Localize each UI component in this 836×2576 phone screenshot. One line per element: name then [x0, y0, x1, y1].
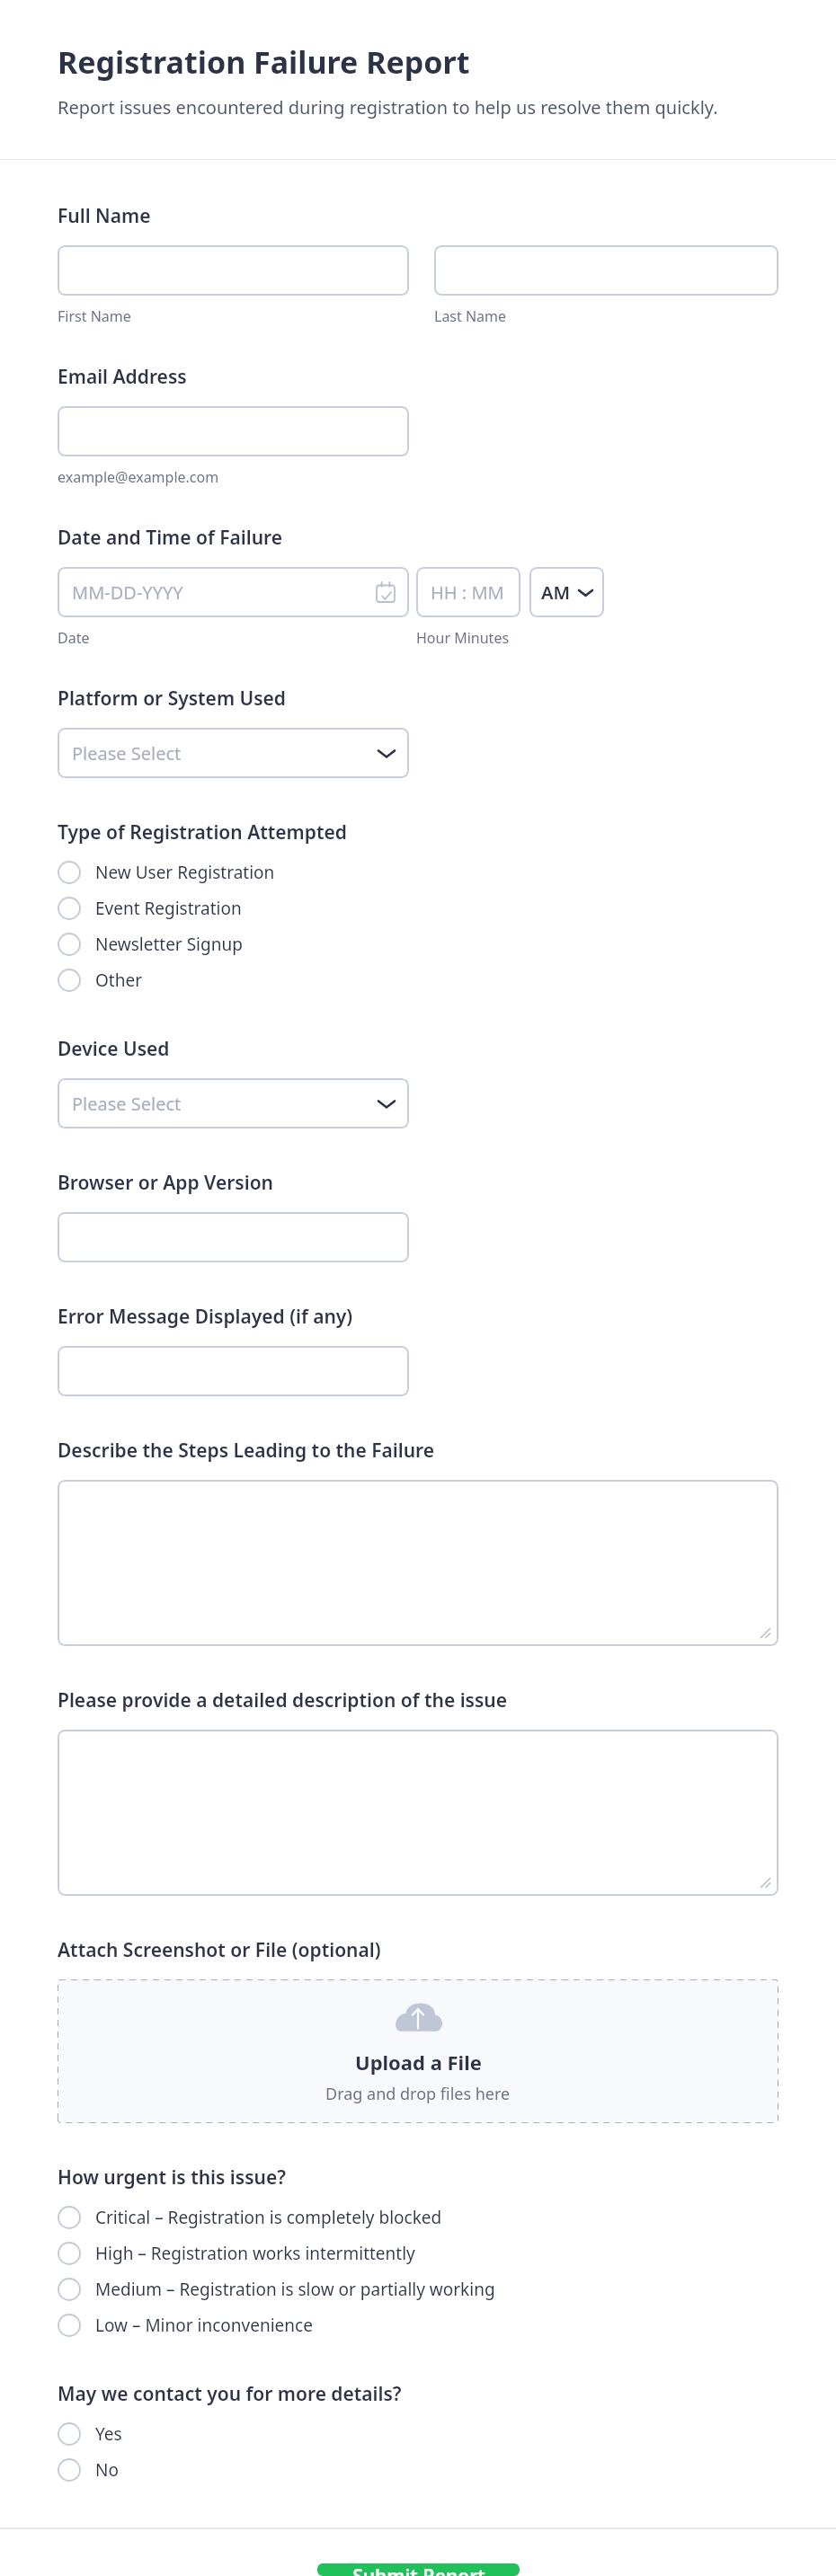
- staticText: Newsletter Signup: [95, 933, 243, 956]
- staticText: Please Select: [72, 741, 182, 766]
- staticText: example@example.com: [58, 467, 219, 487]
- button[interactable]: Critical – Registration is completely bl…: [58, 2200, 778, 2235]
- staticText: Yes: [95, 2422, 122, 2446]
- button[interactable]: Event Registration: [58, 890, 778, 926]
- staticText: Please provide a detailed description of…: [58, 1687, 508, 1713]
- button[interactable]: Newsletter Signup: [58, 926, 778, 962]
- button[interactable]: [58, 1730, 778, 1896]
- button[interactable]: AM: [529, 567, 604, 617]
- button[interactable]: [58, 406, 409, 456]
- staticText: Error Message Displayed (if any): [58, 1304, 353, 1330]
- button[interactable]: MM-DD-YYYY: [58, 567, 409, 617]
- button[interactable]: Low – Minor inconvenience: [58, 2307, 778, 2343]
- staticText: Other: [95, 969, 143, 992]
- button[interactable]: New User Registration: [58, 854, 778, 890]
- staticText: Medium – Registration is slow or partial…: [95, 2278, 495, 2301]
- button[interactable]: Other: [58, 962, 778, 998]
- button[interactable]: High – Registration works intermittently: [58, 2235, 778, 2271]
- button[interactable]: Medium – Registration is slow or partial…: [58, 2271, 778, 2307]
- staticText: First Name: [58, 306, 131, 326]
- staticText: Platform or System Used: [58, 686, 286, 712]
- staticText: May we contact you for more details?: [58, 2381, 402, 2407]
- staticText: Low – Minor inconvenience: [95, 2314, 313, 2337]
- staticText: New User Registration: [95, 861, 275, 884]
- button[interactable]: Please Select: [58, 728, 409, 778]
- staticText: Date: [58, 628, 90, 648]
- button[interactable]: No: [58, 2452, 778, 2488]
- staticText: Attach Screenshot or File (optional): [58, 1937, 381, 1963]
- staticText: Date and Time of Failure: [58, 525, 283, 551]
- staticText: Submit Report: [352, 2563, 485, 2576]
- staticText: No: [95, 2458, 119, 2482]
- button[interactable]: HH : MM: [416, 567, 520, 617]
- staticText: Last Name: [434, 306, 507, 326]
- staticText: How urgent is this issue?: [58, 2164, 286, 2191]
- button[interactable]: Submit Report: [317, 2563, 520, 2576]
- button[interactable]: Please Select: [58, 1078, 409, 1129]
- staticText: Upload a File: [355, 2049, 482, 2076]
- button[interactable]: [58, 1212, 409, 1262]
- staticText: Type of Registration Attempted: [58, 819, 347, 845]
- staticText: Please Select: [72, 1092, 182, 1116]
- staticText: Drag and drop files here: [325, 2083, 511, 2105]
- staticText: High – Registration works intermittently: [95, 2242, 415, 2265]
- button[interactable]: Yes: [58, 2416, 778, 2452]
- staticText: Registration Failure Report: [58, 41, 470, 83]
- button[interactable]: [58, 1480, 778, 1646]
- staticText: Event Registration: [95, 897, 242, 920]
- button[interactable]: [58, 245, 409, 296]
- staticText: MM-DD-YYYY: [72, 580, 183, 605]
- staticText: Critical – Registration is completely bl…: [95, 2206, 442, 2229]
- staticText: Hour Minutes: [416, 628, 510, 648]
- staticText: HH : MM: [431, 580, 504, 605]
- staticText: Describe the Steps Leading to the Failur…: [58, 1438, 435, 1464]
- staticText: AM: [541, 580, 571, 605]
- staticText: Full Name: [58, 203, 151, 229]
- button[interactable]: [58, 1346, 409, 1396]
- staticText: Email Address: [58, 364, 187, 390]
- staticText: Browser or App Version: [58, 1170, 273, 1196]
- staticText: Device Used: [58, 1036, 170, 1062]
- staticText: Report issues encountered during registr…: [58, 95, 718, 120]
- button[interactable]: [434, 245, 778, 296]
- button[interactable]: Upload a File: [58, 1979, 778, 2123]
